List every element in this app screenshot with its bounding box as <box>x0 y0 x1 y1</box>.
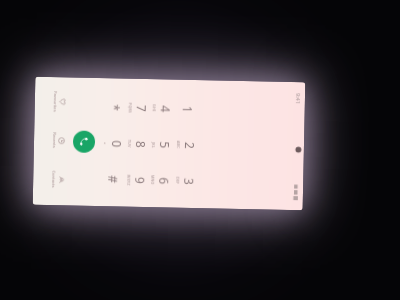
staticText: 9:41 <box>295 93 302 104</box>
button[interactable]: 3 <box>175 164 198 198</box>
staticText: + <box>103 142 108 145</box>
button[interactable]: # <box>102 162 125 197</box>
staticText: 1 <box>180 106 196 113</box>
button[interactable]: 9 <box>126 163 149 197</box>
staticText: 0 <box>109 140 125 147</box>
button[interactable]: Recents <box>48 126 68 154</box>
staticText: # <box>105 175 121 183</box>
button[interactable]: 4 <box>151 91 174 126</box>
staticText: JKL <box>151 142 156 148</box>
staticText: 5 <box>157 141 173 148</box>
button[interactable]: Favourites <box>49 87 69 115</box>
button[interactable]: 6 <box>150 163 173 198</box>
staticText: GHI <box>152 104 157 112</box>
button[interactable]: 1 <box>176 92 199 126</box>
button[interactable]: Contacts <box>47 165 67 193</box>
staticText: ABC <box>176 141 181 149</box>
staticText: WXYZ <box>126 175 131 186</box>
button[interactable]: Call <box>73 130 95 153</box>
staticText: 7 <box>134 105 150 112</box>
staticText: 6 <box>156 177 172 184</box>
staticText: Recents <box>51 132 57 148</box>
button[interactable]: 0 <box>103 126 125 161</box>
staticText: DEF <box>175 177 180 185</box>
staticText: Favourites <box>52 91 58 112</box>
staticText: TUV <box>127 140 132 148</box>
staticText: 3 <box>181 178 197 185</box>
staticText: 9 <box>132 177 148 184</box>
staticText: * <box>107 104 123 111</box>
button[interactable]: 7 <box>127 91 150 125</box>
button[interactable]: * <box>103 90 126 125</box>
button[interactable]: 8 <box>127 127 149 161</box>
staticText: PQRS <box>128 103 133 114</box>
staticText: 4 <box>158 105 174 113</box>
staticText: 8 <box>133 141 149 148</box>
staticText: Contacts <box>50 170 56 188</box>
staticText: 2 <box>182 142 198 149</box>
staticText: MNO <box>150 175 155 185</box>
button[interactable]: 2 <box>176 128 198 162</box>
button[interactable]: 5 <box>151 127 173 162</box>
